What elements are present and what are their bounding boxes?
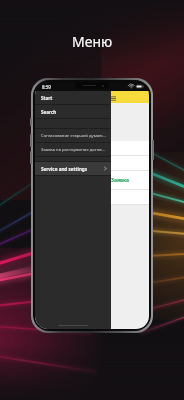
staticText: Заявка [111,177,129,184]
button[interactable]: Start [35,91,111,104]
button[interactable]: Service and settings [35,162,111,175]
staticText: Согласование старшей думаюст… [41,133,107,139]
button[interactable]: Согласование старшей думаюст… [35,129,111,142]
button[interactable]: Заявка на расторжение договора [35,143,111,156]
button[interactable]: Search [35,105,111,118]
staticText: Search [41,109,107,115]
staticText: Меню [72,32,113,51]
staticText: Service and settings [41,166,104,172]
staticText: Заявка на расторжение договора [41,147,107,153]
button[interactable]: Open navigation menu [109,94,117,102]
staticText: Start [41,95,107,101]
staticText: 8:59 [42,84,51,90]
